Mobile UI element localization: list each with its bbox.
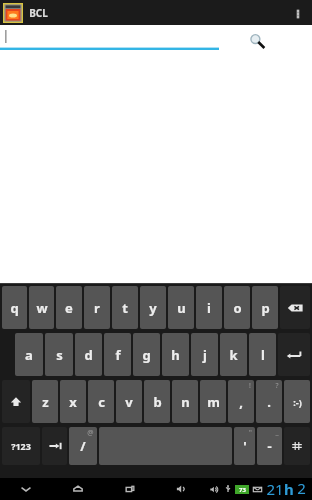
staticText: BCL [29,6,48,20]
button[interactable]: backspace [280,286,310,329]
button[interactable]: i [196,286,222,329]
button[interactable]: x [60,380,86,423]
staticText: u [177,299,186,317]
button[interactable]: Hide keyboard [0,478,52,500]
button[interactable]: shift [2,380,30,423]
button[interactable]: y [140,286,166,329]
button[interactable]: App icon [3,3,23,23]
staticText: n [181,393,190,411]
staticText: j [203,346,207,364]
staticText: 21 [266,479,284,499]
staticText: / [80,437,86,455]
staticText: 73 [239,486,246,494]
button[interactable]: d [75,333,102,376]
staticText: a [25,346,33,364]
staticText: o [233,299,242,317]
button[interactable]: v [116,380,142,423]
staticText: p [261,299,270,317]
staticText: l [261,346,265,364]
button[interactable]: n [172,380,198,423]
button[interactable]: Recents [104,478,156,500]
staticText: , [239,393,243,411]
staticText: " [249,428,252,438]
staticText: ?123 [11,440,31,452]
button[interactable]: ?123 [2,427,40,465]
button[interactable]: o [224,286,250,329]
button[interactable]: e [56,286,82,329]
button[interactable]: - [257,427,282,465]
staticText: h [284,479,294,499]
staticText: :-) [293,396,302,408]
button[interactable]: h [162,333,189,376]
button[interactable]: s [45,333,73,376]
button[interactable]: :-) [284,380,310,423]
staticText: g [142,346,151,364]
staticText: ! [249,381,251,391]
button[interactable]: u [168,286,194,329]
staticText: h [171,346,180,364]
staticText: t [122,299,128,317]
button[interactable]: b [144,380,170,423]
staticText: q [10,299,19,317]
button[interactable]: More options [288,0,308,25]
button[interactable] [0,28,219,50]
staticText: w [36,299,48,317]
button[interactable]: c [88,380,114,423]
staticText: @ [87,428,94,438]
button[interactable]: r [84,286,110,329]
staticText: ' [243,437,247,455]
button[interactable]: l [249,333,276,376]
staticText: - [267,437,272,455]
button[interactable]: tab [42,427,67,465]
button[interactable]: m [200,380,226,423]
button[interactable]: Home [52,478,104,500]
staticText: 20 [294,478,309,500]
staticText: ? [275,381,279,391]
staticText: . [267,393,271,411]
staticText: s [56,346,63,364]
staticText: i [207,299,211,317]
button[interactable]: q [2,286,27,329]
staticText: x [69,393,77,411]
staticText: c [98,393,105,411]
staticText: e [65,299,73,317]
button[interactable]: . [256,380,282,423]
button[interactable]: z [32,380,58,423]
button[interactable]: / [69,427,97,465]
button[interactable]: a [15,333,43,376]
staticText: _ [275,428,279,438]
button[interactable]: w [29,286,54,329]
button[interactable]: ' [234,427,255,465]
staticText: z [42,393,49,411]
button[interactable]: k [220,333,247,376]
staticText: d [84,346,93,364]
button[interactable]: Search [246,30,268,52]
button[interactable]: t [112,286,138,329]
button[interactable]: enter [278,333,310,376]
button[interactable]: g [133,333,160,376]
staticText: v [125,393,133,411]
button[interactable]: f [104,333,131,376]
staticText: r [94,299,100,317]
staticText: f [115,346,121,364]
button[interactable]: , [228,380,254,423]
button[interactable]: Volume [156,478,208,500]
button[interactable]: ime [284,427,310,465]
button[interactable]: j [191,333,218,376]
staticText: k [229,346,238,364]
staticText: b [153,393,162,411]
button[interactable]: p [252,286,278,329]
staticText: y [149,299,157,317]
staticText: m [207,393,220,411]
